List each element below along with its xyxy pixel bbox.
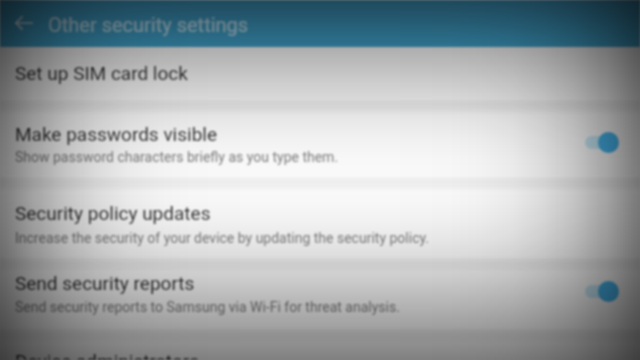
staticText: Set up SIM card lock bbox=[15, 62, 188, 84]
staticText: Send security reports bbox=[15, 272, 195, 294]
staticText: Send security reports to Samsung via Wi-… bbox=[15, 299, 400, 315]
button[interactable] bbox=[0, 179, 640, 258]
button[interactable]: Back bbox=[9, 8, 39, 38]
button[interactable] bbox=[0, 47, 640, 101]
staticText: Show password characters briefly as you … bbox=[15, 149, 339, 165]
button[interactable]: Send security reports toggle bbox=[584, 276, 630, 306]
button[interactable] bbox=[0, 330, 640, 360]
button[interactable] bbox=[0, 101, 640, 177]
staticText: Device administrators bbox=[15, 350, 199, 360]
button[interactable] bbox=[0, 260, 640, 328]
staticText: Security policy updates bbox=[15, 202, 211, 224]
button[interactable]: Make passwords visible toggle bbox=[584, 127, 630, 157]
staticText: Make passwords visible bbox=[15, 123, 217, 145]
staticText: Other security settings bbox=[48, 13, 249, 36]
staticText: Increase the security of your device by … bbox=[15, 230, 430, 246]
